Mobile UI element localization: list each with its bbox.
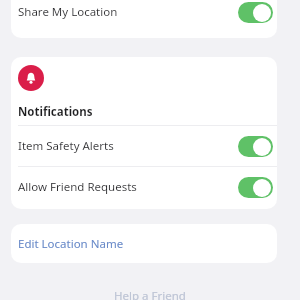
button[interactable]: Edit Location Name xyxy=(11,224,277,263)
button[interactable]: Share My Location xyxy=(11,0,277,38)
staticText: Share My Location xyxy=(18,4,118,20)
button[interactable]: Allow Friend Requests xyxy=(11,167,277,207)
staticText: Edit Location Name xyxy=(18,236,124,252)
button[interactable]: Item Safety Alerts xyxy=(11,126,277,166)
button[interactable]: Toggle on xyxy=(238,136,273,157)
staticText: Notifications xyxy=(18,104,93,120)
button[interactable]: Help a Friend xyxy=(0,288,300,300)
staticText: Allow Friend Requests xyxy=(18,179,137,195)
button[interactable]: Toggle on xyxy=(238,2,273,23)
button[interactable]: Toggle on xyxy=(238,177,273,198)
staticText: Item Safety Alerts xyxy=(18,138,114,154)
staticText: Help a Friend xyxy=(114,288,186,300)
